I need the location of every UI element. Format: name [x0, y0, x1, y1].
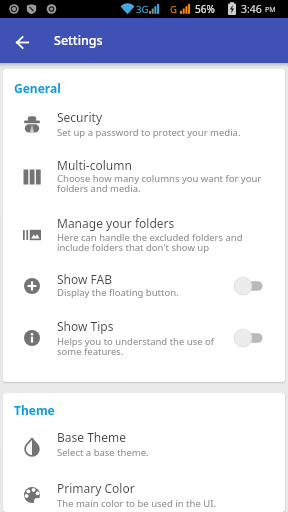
- staticText: The main color to be used in the UI.: [57, 497, 216, 510]
- button[interactable]: Base Theme: [3, 426, 285, 476]
- staticText: Base Theme: [57, 429, 127, 445]
- staticText: Multi-column: [57, 157, 132, 173]
- staticText: General: [14, 80, 61, 96]
- staticText: Theme: [14, 402, 55, 418]
- staticText: Primary Color: [57, 480, 135, 496]
- staticText: G: [170, 3, 177, 16]
- staticText: Manage your folders: [57, 215, 175, 231]
- staticText: Set up a password to protect your media.: [57, 126, 241, 139]
- staticText: Select a base theme.: [57, 446, 149, 459]
- staticText: Choose how many columns you want for you…: [57, 172, 262, 195]
- button[interactable]: Primary Color: [3, 477, 285, 512]
- button[interactable]: Show FAB: [3, 268, 285, 314]
- staticText: Show FAB: [57, 271, 113, 287]
- staticText: PM: [265, 5, 276, 15]
- staticText: Display the floating button.: [57, 286, 179, 299]
- button[interactable]: Show Tips: [3, 315, 285, 373]
- button[interactable]: [0, 18, 44, 63]
- staticText: 3:46: [241, 2, 262, 16]
- staticText: 3G: [136, 3, 149, 16]
- staticText: Show Tips: [57, 318, 114, 334]
- staticText: Helps you to understand the use of some …: [57, 335, 215, 358]
- button[interactable]: Multi-column: [3, 149, 285, 207]
- staticText: Security: [57, 109, 103, 125]
- staticText: Settings: [54, 32, 103, 49]
- button[interactable]: Security: [3, 100, 285, 145]
- staticText: Here can handle the excluded folders and…: [57, 231, 243, 254]
- button[interactable]: Manage your folders: [3, 209, 285, 267]
- staticText: 56%: [195, 2, 215, 16]
